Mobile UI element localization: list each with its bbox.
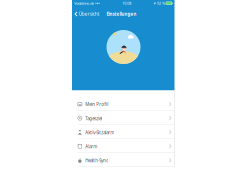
button[interactable]: Tagesziel bbox=[72, 111, 175, 124]
staticText: Einstellungen bbox=[106, 11, 136, 17]
button[interactable]: Aktiv-Sitzalarm bbox=[72, 125, 175, 138]
staticText: Vodafone.de bbox=[74, 1, 94, 6]
staticText: Health-Sync bbox=[85, 158, 108, 164]
button[interactable]: Übersicht bbox=[72, 7, 102, 20]
staticText: Alarm bbox=[85, 144, 97, 150]
staticText: Tagesziel bbox=[85, 115, 102, 121]
staticText: Aktiv-Sitzalarm bbox=[85, 129, 114, 135]
staticText: 92 % bbox=[157, 1, 165, 6]
button[interactable]: Health-Sync bbox=[72, 153, 175, 166]
staticText: Mein Profil bbox=[85, 101, 108, 107]
button[interactable]: Alarm bbox=[72, 139, 175, 152]
staticText: Übersicht bbox=[79, 11, 100, 17]
staticText: 10:08 bbox=[122, 1, 131, 6]
button[interactable]: Mein Profil bbox=[72, 97, 175, 110]
